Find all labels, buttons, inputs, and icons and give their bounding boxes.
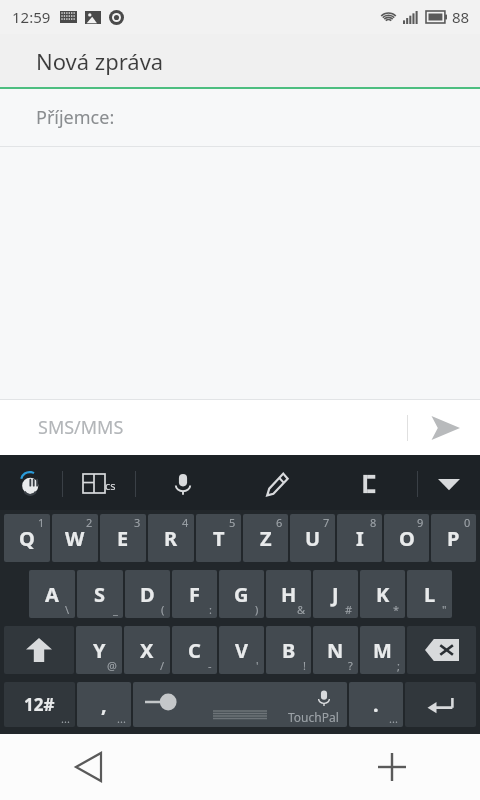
button[interactable]: enter xyxy=(405,682,476,727)
staticText: W xyxy=(65,525,85,552)
button[interactable]: Y xyxy=(76,626,122,674)
button[interactable]: N xyxy=(313,626,358,674)
staticText: . xyxy=(373,691,379,718)
staticText: ' xyxy=(256,658,259,673)
button[interactable]: Nová zpráva xyxy=(0,34,480,87)
button[interactable]: I xyxy=(337,514,382,562)
button[interactable]: C xyxy=(172,626,217,674)
staticText: @ xyxy=(107,658,117,673)
staticText: G xyxy=(234,581,249,608)
button[interactable]: Příjemce: xyxy=(0,89,480,146)
staticText: : xyxy=(209,602,212,617)
button[interactable]: U xyxy=(290,514,335,562)
staticText: O xyxy=(399,525,415,552)
staticText: ... xyxy=(117,711,126,726)
staticText: 88 xyxy=(452,7,470,27)
button[interactable]: W xyxy=(52,514,98,562)
staticText: # xyxy=(345,602,353,617)
button[interactable]: E xyxy=(100,514,146,562)
staticText: Nová zpráva xyxy=(36,46,164,76)
staticText: H xyxy=(281,581,297,608)
staticText: Q xyxy=(19,525,35,552)
button[interactable]: SMS/MMS xyxy=(0,400,403,455)
button[interactable]: V xyxy=(219,626,264,674)
staticText: cs xyxy=(105,478,116,493)
staticText: ( xyxy=(161,602,165,617)
button[interactable]: H xyxy=(266,570,311,618)
staticText: & xyxy=(297,602,306,617)
button[interactable]: space xyxy=(133,682,347,727)
staticText: 3 xyxy=(134,515,141,530)
staticText: Y xyxy=(93,637,106,664)
button[interactable]: T xyxy=(196,514,241,562)
button[interactable]: . xyxy=(349,682,403,727)
staticText: 1 xyxy=(38,515,45,530)
button[interactable]: D xyxy=(125,570,170,618)
staticText: 0 xyxy=(464,515,471,530)
staticText: ! xyxy=(303,658,306,673)
button[interactable]: B xyxy=(266,626,311,674)
staticText: N xyxy=(327,637,344,664)
staticText: Z xyxy=(260,525,272,552)
staticText: 4 xyxy=(182,515,189,530)
button[interactable]: K xyxy=(360,570,405,618)
button[interactable]: G xyxy=(219,570,264,618)
button[interactable]: Send xyxy=(410,400,480,455)
staticText: _ xyxy=(113,602,118,617)
staticText: L xyxy=(424,581,436,608)
button[interactable]: F xyxy=(172,570,217,618)
staticText: ; xyxy=(397,658,400,673)
button[interactable]: O xyxy=(384,514,429,562)
staticText: B xyxy=(282,637,296,664)
button[interactable]: Z xyxy=(243,514,288,562)
button[interactable]: shift xyxy=(4,626,74,674)
staticText: J xyxy=(332,581,339,608)
button[interactable]: TouchPal xyxy=(323,457,417,510)
button[interactable]: L xyxy=(407,570,452,618)
staticText: 12# xyxy=(24,693,55,716)
button[interactable]: , xyxy=(77,682,131,727)
button[interactable]: Handwriting xyxy=(229,457,323,510)
staticText: 2 xyxy=(86,515,93,530)
button[interactable]: Menu xyxy=(364,739,420,795)
button[interactable]: Swipe input xyxy=(0,457,62,510)
staticText: 9 xyxy=(417,515,424,530)
staticText: / xyxy=(160,658,165,673)
staticText: V xyxy=(235,637,248,664)
button[interactable]: Layout cs xyxy=(63,457,135,510)
button[interactable]: Q xyxy=(4,514,50,562)
button[interactable]: Hide keyboard xyxy=(418,457,480,510)
staticText: 8 xyxy=(370,515,377,530)
button[interactable]: R xyxy=(148,514,194,562)
staticText: ... xyxy=(389,711,398,726)
staticText: K xyxy=(376,581,390,608)
button[interactable]: M xyxy=(360,626,405,674)
button[interactable]: A xyxy=(29,570,75,618)
button[interactable]: X xyxy=(124,626,170,674)
staticText: " xyxy=(442,602,447,617)
button[interactable]: 12# xyxy=(4,682,75,727)
staticText: Příjemce: xyxy=(36,105,115,130)
staticText: C xyxy=(188,637,201,664)
staticText: SMS/MMS xyxy=(38,415,124,440)
staticText: T xyxy=(213,525,225,552)
staticText: I xyxy=(356,525,364,552)
button[interactable]: Back xyxy=(60,739,116,795)
staticText: U xyxy=(305,525,321,552)
button[interactable]: Voice input xyxy=(136,457,229,510)
button[interactable]: S xyxy=(77,570,123,618)
staticText: TouchPal xyxy=(288,709,339,725)
staticText: 7 xyxy=(323,515,330,530)
staticText: ? xyxy=(348,658,353,673)
button[interactable]: J xyxy=(313,570,358,618)
button[interactable]: backspace xyxy=(407,626,476,674)
button[interactable]: P xyxy=(431,514,476,562)
staticText: 12:59 xyxy=(12,7,51,27)
staticText: S xyxy=(94,581,106,608)
staticText: ... xyxy=(61,711,70,726)
staticText: 6 xyxy=(276,515,283,530)
staticText: X xyxy=(140,637,154,664)
staticText: E xyxy=(117,525,129,552)
staticText: 5 xyxy=(229,515,236,530)
staticText: \ xyxy=(65,602,70,617)
